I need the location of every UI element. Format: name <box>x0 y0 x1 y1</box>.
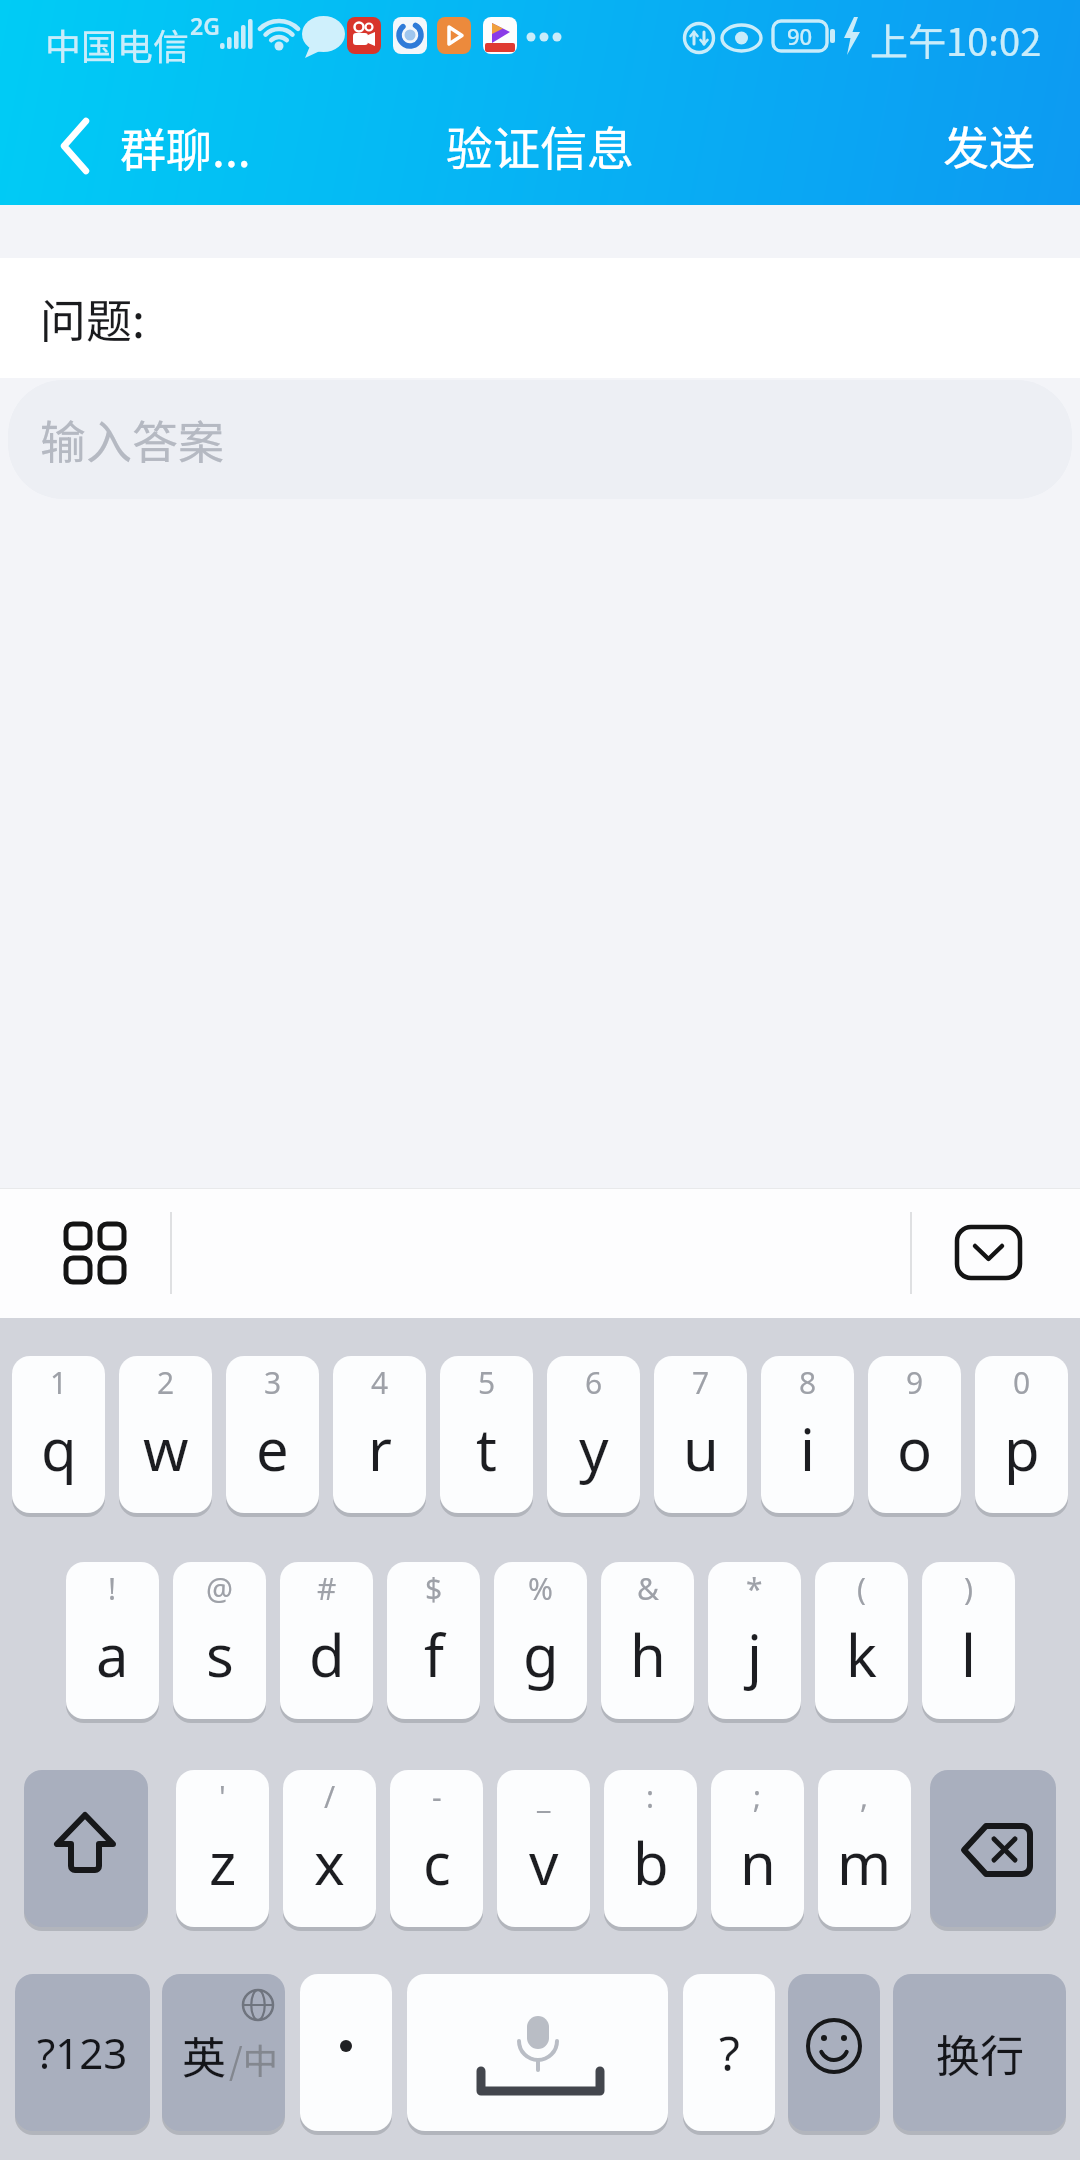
button[interactable]: 换行 <box>893 1974 1066 2131</box>
staticText: $ <box>425 1568 443 1609</box>
staticText: 90 <box>787 21 813 51</box>
staticText: /中 <box>229 2033 278 2084</box>
button[interactable] <box>50 1215 140 1291</box>
staticText: 6 <box>585 1362 603 1403</box>
button[interactable]: ? <box>683 1974 775 2131</box>
staticText: q <box>41 1409 77 1488</box>
button[interactable]: 2 <box>119 1356 212 1513</box>
staticText: i <box>800 1409 815 1488</box>
staticText: g <box>523 1615 559 1694</box>
staticText: 7 <box>692 1362 710 1403</box>
button[interactable]: 5 <box>440 1356 533 1513</box>
button[interactable]: 3 <box>226 1356 319 1513</box>
staticText: % <box>528 1568 553 1609</box>
staticText: h <box>630 1615 666 1694</box>
staticText: 中国电信 <box>45 18 190 70</box>
staticText: 验证信息 <box>446 111 634 179</box>
button[interactable] <box>945 1218 1035 1288</box>
staticText: m <box>837 1823 892 1902</box>
button[interactable] <box>407 1974 668 2131</box>
staticText: 群聊... <box>120 114 251 181</box>
staticText: w <box>143 1409 189 1488</box>
button[interactable]: 8 <box>761 1356 854 1513</box>
staticText: c <box>423 1823 451 1902</box>
button[interactable]: * <box>708 1562 801 1719</box>
staticText: , <box>860 1776 869 1817</box>
staticText: 2G <box>190 10 220 41</box>
button[interactable] <box>930 1770 1056 1927</box>
button[interactable]: , <box>818 1770 911 1927</box>
staticText: ? <box>719 2020 740 2085</box>
staticText: o <box>897 1409 933 1488</box>
staticText: 9 <box>906 1362 924 1403</box>
staticText: y <box>579 1409 609 1488</box>
staticText: 上午10:02 <box>870 12 1042 64</box>
staticText: ; <box>753 1776 762 1817</box>
button[interactable]: ! <box>66 1562 159 1719</box>
button[interactable]: 英 <box>162 1974 285 2131</box>
button[interactable]: - <box>390 1770 483 1927</box>
staticText: s <box>206 1615 234 1694</box>
button[interactable]: / <box>283 1770 376 1927</box>
staticText: v <box>529 1823 559 1902</box>
staticText: 5 <box>478 1362 496 1403</box>
staticText: 英 <box>182 2023 226 2087</box>
staticText: & <box>637 1568 659 1609</box>
staticText: : <box>646 1776 655 1817</box>
button[interactable]: 0 <box>975 1356 1068 1513</box>
staticText: 2 <box>157 1362 175 1403</box>
staticText: 3 <box>264 1362 282 1403</box>
button[interactable]: ; <box>711 1770 804 1927</box>
staticText: ?123 <box>37 2024 128 2081</box>
staticText: d <box>309 1615 345 1694</box>
staticText: 1 <box>50 1362 68 1403</box>
staticText: 8 <box>799 1362 817 1403</box>
button[interactable]: 发送 <box>865 105 1035 185</box>
staticText: b <box>633 1823 669 1902</box>
staticText: # <box>317 1568 337 1609</box>
button[interactable]: : <box>604 1770 697 1927</box>
staticText: - <box>432 1776 442 1817</box>
button[interactable]: 6 <box>547 1356 640 1513</box>
button[interactable]: ' <box>176 1770 269 1927</box>
staticText: r <box>368 1409 392 1488</box>
staticText: 发送 <box>943 112 1035 179</box>
button[interactable] <box>300 1974 392 2131</box>
staticText: / <box>324 1776 336 1817</box>
staticText: @ <box>206 1568 233 1609</box>
button[interactable]: 4 <box>333 1356 426 1513</box>
button[interactable] <box>788 1974 880 2131</box>
staticText: u <box>683 1409 719 1488</box>
staticText: 换行 <box>936 2021 1024 2085</box>
staticText: 输入答案 <box>40 406 224 473</box>
button[interactable]: $ <box>387 1562 480 1719</box>
button[interactable]: @ <box>173 1562 266 1719</box>
staticText: z <box>209 1823 237 1902</box>
button[interactable]: % <box>494 1562 587 1719</box>
button[interactable]: 输入答案 <box>8 380 1072 499</box>
staticText: ) <box>964 1568 973 1609</box>
button[interactable]: ) <box>922 1562 1015 1719</box>
staticText: * <box>746 1568 763 1609</box>
staticText: n <box>740 1823 776 1902</box>
button[interactable]: 7 <box>654 1356 747 1513</box>
button[interactable] <box>40 105 110 190</box>
staticText: 4 <box>371 1362 389 1403</box>
staticText: _ <box>537 1776 551 1817</box>
staticText: t <box>476 1409 497 1488</box>
button[interactable]: 9 <box>868 1356 961 1513</box>
staticText: ' <box>219 1776 226 1817</box>
staticText: e <box>256 1409 289 1488</box>
staticText: ! <box>108 1568 117 1609</box>
staticText: p <box>1004 1409 1040 1488</box>
button[interactable]: _ <box>497 1770 590 1927</box>
button[interactable]: 1 <box>12 1356 105 1513</box>
button[interactable]: ?123 <box>15 1974 150 2131</box>
button[interactable]: ( <box>815 1562 908 1719</box>
button[interactable]: & <box>601 1562 694 1719</box>
button[interactable] <box>24 1770 148 1927</box>
staticText: j <box>747 1615 762 1694</box>
staticText: l <box>961 1615 976 1694</box>
button[interactable]: # <box>280 1562 373 1719</box>
staticText: f <box>424 1615 444 1694</box>
